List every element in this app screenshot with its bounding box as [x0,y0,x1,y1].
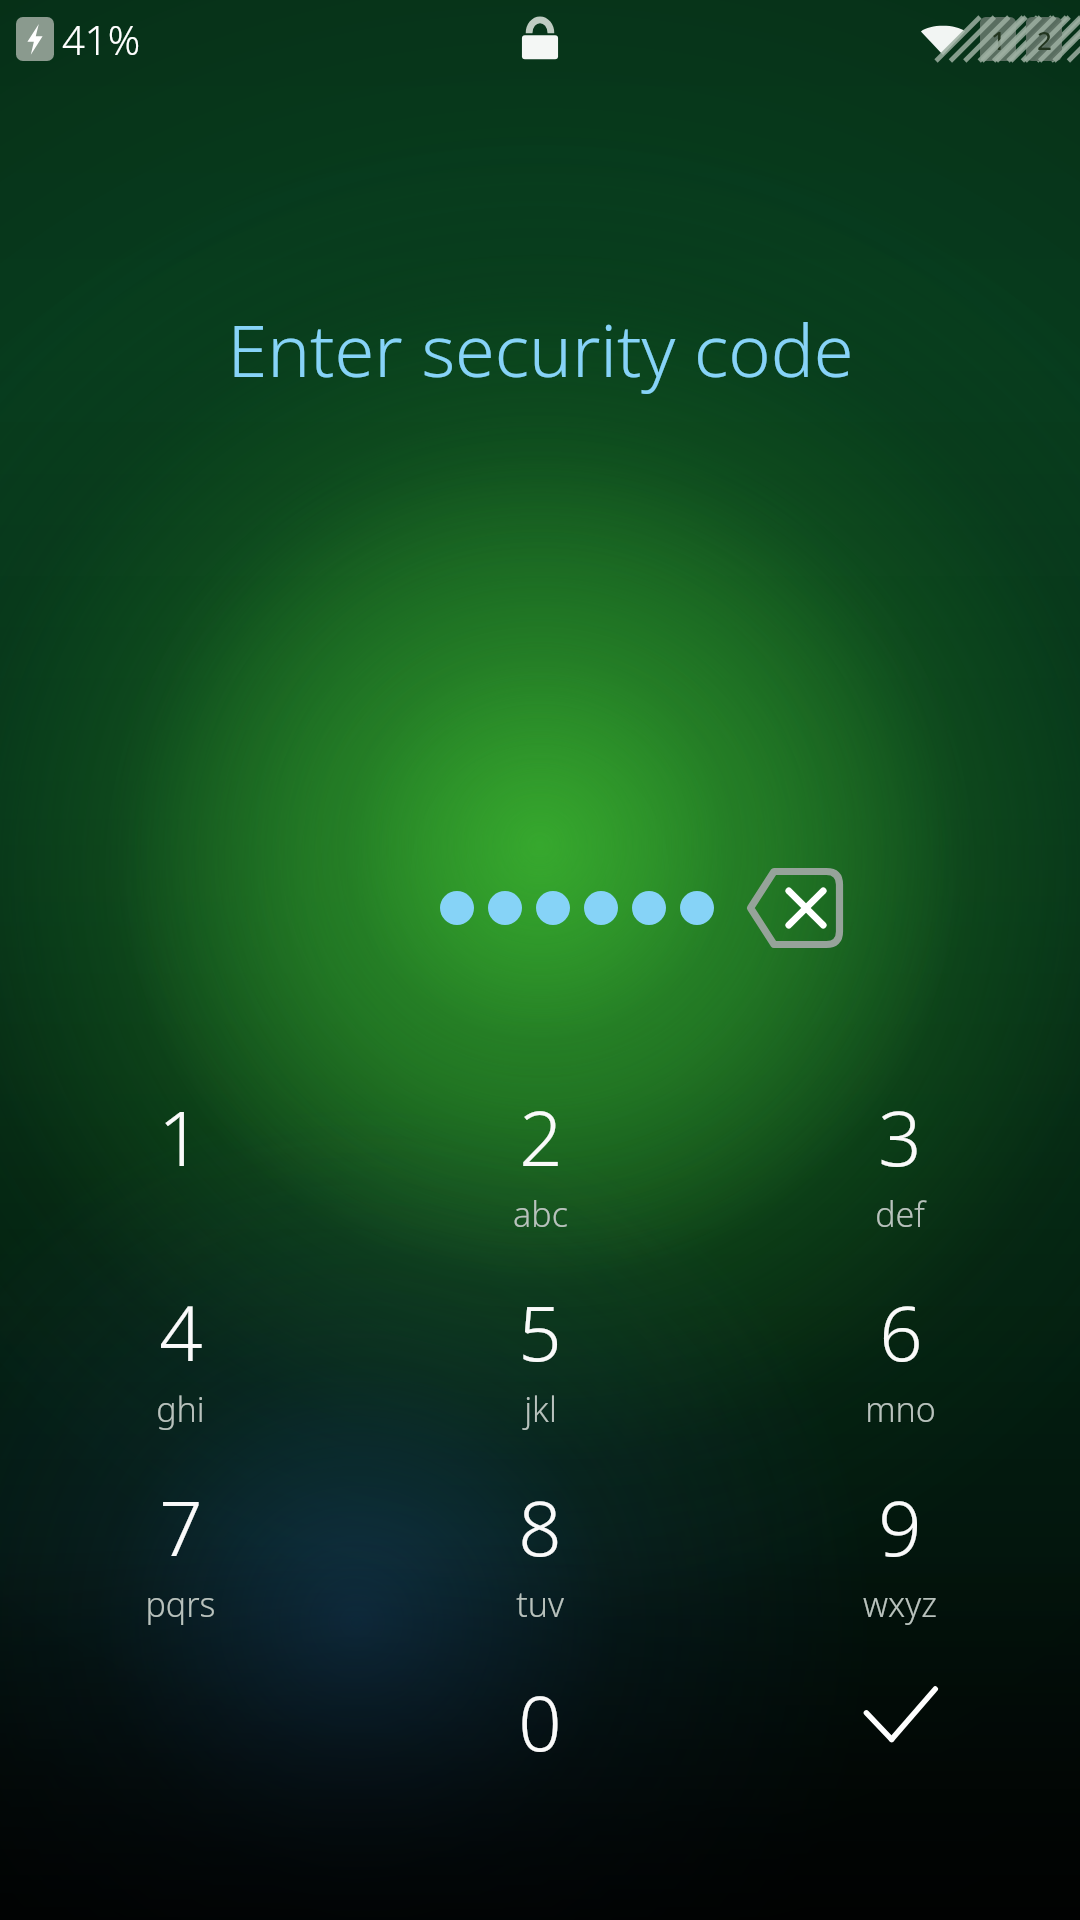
staticText: 8 [518,1475,562,1579]
button[interactable]: Backspace [744,867,844,949]
staticText: 7 [159,1475,203,1579]
staticText: 41% [62,12,141,66]
staticText: 6 [879,1280,923,1384]
staticText: 2 [519,1085,563,1189]
button[interactable]: 9 [720,1475,1080,1670]
button[interactable]: 7 [0,1475,360,1670]
staticText: pqrs [145,1581,216,1627]
staticText: ghi [156,1386,205,1432]
staticText: 4 [159,1280,203,1384]
staticText: 5 [518,1280,562,1384]
staticText: 1 [991,22,1006,57]
button[interactable]: 8 [360,1475,720,1670]
staticText: mno [865,1386,936,1432]
button[interactable]: 6 [720,1280,1080,1475]
staticText: 2 [1037,22,1052,57]
staticText: abc [513,1191,568,1237]
button[interactable]: 5 [360,1280,720,1475]
staticText: Enter security code [227,300,854,398]
staticText: jkl [524,1386,557,1432]
staticText: 9 [878,1475,922,1579]
staticText: def [875,1191,925,1237]
button[interactable]: 4 [0,1280,360,1475]
button[interactable]: 3 [720,1085,1080,1280]
staticText: wxyz [863,1581,937,1627]
staticText: 1 [158,1085,202,1189]
staticText: 3 [878,1085,922,1189]
button[interactable]: 1 [0,1085,360,1280]
button[interactable]: 0 [360,1670,720,1865]
staticText: tuv [516,1581,564,1627]
button[interactable]: 2 [360,1085,720,1280]
staticText: 0 [518,1670,562,1774]
button[interactable]: Confirm [720,1670,1080,1865]
